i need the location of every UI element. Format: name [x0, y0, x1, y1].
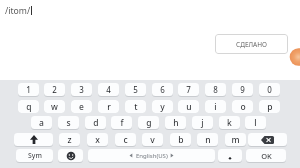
button[interactable]: x [87, 133, 108, 146]
button[interactable]: 5 [125, 83, 146, 96]
button[interactable]: a [31, 116, 52, 129]
button[interactable]: r [98, 100, 119, 113]
button[interactable]: g [138, 116, 159, 129]
staticText: x [95, 134, 100, 146]
staticText: e [79, 101, 84, 113]
button[interactable]: 4 [98, 83, 119, 96]
staticText: c [123, 134, 128, 146]
button[interactable]: v [142, 133, 163, 146]
button[interactable]: s [58, 116, 79, 129]
staticText: w [51, 101, 58, 113]
staticText: 9 [240, 84, 245, 95]
staticText: i [214, 101, 217, 113]
button[interactable]: i [205, 100, 226, 113]
staticText: r [107, 101, 111, 113]
button[interactable]: 9 [232, 83, 253, 96]
staticText: 3 [79, 84, 84, 95]
staticText: v [150, 134, 155, 146]
button[interactable]: p [259, 100, 280, 113]
staticText: 1 [26, 84, 31, 95]
staticText: n [205, 134, 211, 146]
button[interactable]: y [152, 100, 173, 113]
staticText: d [93, 117, 99, 129]
button[interactable]: 1 [18, 83, 39, 96]
button[interactable]: 0 [259, 83, 280, 96]
staticText: f [120, 117, 124, 129]
button[interactable] [58, 149, 83, 162]
staticText: l [254, 117, 257, 129]
staticText: u [186, 101, 192, 113]
button[interactable]: h [165, 116, 186, 129]
staticText: g [146, 117, 152, 129]
staticText: 2 [52, 84, 57, 95]
button[interactable]: 8 [205, 83, 226, 96]
button[interactable]: n [197, 133, 218, 146]
staticText: СДЕЛАНО [236, 40, 267, 49]
staticText: English(US) [136, 152, 168, 160]
button[interactable]: e [71, 100, 92, 113]
staticText: 8 [213, 84, 218, 95]
staticText: m [231, 134, 240, 146]
staticText: s [66, 117, 71, 129]
staticText: o [240, 101, 246, 113]
button[interactable]: z [59, 133, 80, 146]
staticText: 7 [186, 84, 191, 95]
staticText: 0 [267, 84, 272, 95]
button[interactable] [14, 133, 53, 146]
staticText: z [67, 134, 72, 146]
button[interactable]: l [245, 116, 266, 129]
staticText: j [201, 117, 204, 129]
button[interactable]: b [170, 133, 191, 146]
button[interactable]: 3 [71, 83, 92, 96]
button[interactable]: 6 [152, 83, 173, 96]
staticText: b [178, 134, 184, 146]
button[interactable]: c [115, 133, 136, 146]
staticText: 6 [160, 84, 165, 95]
staticText: h [173, 117, 179, 129]
button[interactable]: f [111, 116, 132, 129]
staticText: y [160, 101, 165, 113]
staticText: /itom/ [5, 5, 31, 17]
staticText: 4 [106, 84, 111, 95]
staticText: q [26, 101, 32, 113]
button[interactable]: Sym [16, 149, 53, 162]
staticText: k [227, 117, 232, 129]
staticText: OK [261, 151, 272, 161]
button[interactable]: k [219, 116, 240, 129]
button[interactable] [248, 133, 287, 146]
button[interactable]: o [232, 100, 253, 113]
staticText: a [39, 117, 44, 129]
button[interactable]: OK [246, 149, 286, 162]
button[interactable]: q [18, 100, 39, 113]
button[interactable]: m [225, 133, 246, 146]
staticText: Sym [28, 151, 42, 160]
button[interactable]: 7 [178, 83, 199, 96]
button[interactable]: d [85, 116, 106, 129]
button[interactable]: w [44, 100, 65, 113]
button[interactable]: u [178, 100, 199, 113]
button[interactable]: English(US) [88, 149, 215, 162]
button[interactable] [218, 149, 242, 162]
staticText: t [134, 101, 138, 113]
button[interactable]: 2 [44, 83, 65, 96]
button[interactable]: j [192, 116, 213, 129]
staticText: p [267, 101, 273, 113]
button[interactable]: СДЕЛАНО [215, 34, 288, 54]
button[interactable]: t [125, 100, 146, 113]
staticText: 5 [133, 84, 138, 95]
